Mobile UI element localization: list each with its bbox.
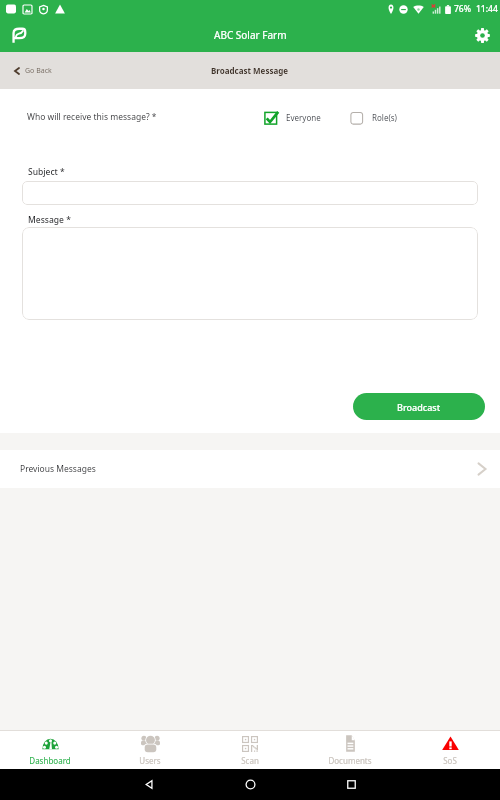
staticText: Subject *: [28, 166, 65, 178]
button[interactable]: Users: [100, 735, 200, 766]
staticText: Broadcast: [397, 401, 441, 413]
button[interactable]: Go Back: [13, 66, 52, 76]
staticText: Everyone: [286, 112, 321, 123]
button[interactable]: Home: [234, 769, 266, 800]
staticText: Who will receive this message? *: [27, 111, 157, 123]
button[interactable]: Home: [6, 23, 30, 47]
staticText: Documents: [328, 755, 372, 766]
button[interactable]: Previous Messages: [0, 450, 500, 488]
button[interactable]: SoS: [400, 735, 500, 766]
button[interactable]: Recent apps: [335, 769, 367, 800]
button[interactable]: [22, 181, 478, 205]
button[interactable]: Broadcast: [353, 393, 485, 420]
staticText: Role(s): [372, 112, 398, 123]
staticText: Scan: [241, 755, 259, 766]
button[interactable]: Documents: [300, 735, 400, 766]
staticText: SoS: [443, 755, 457, 766]
staticText: Broadcast Message: [211, 65, 289, 76]
staticText: Dashboard: [29, 755, 71, 766]
button[interactable]: Everyone: [264, 110, 321, 125]
button[interactable]: Role(s): [350, 110, 398, 125]
button[interactable]: Dashboard: [0, 735, 100, 766]
staticText: 76%: [454, 3, 471, 15]
staticText: Users: [139, 755, 161, 766]
staticText: 11:44: [476, 3, 498, 15]
button[interactable]: Settings: [470, 23, 494, 47]
button[interactable]: [22, 227, 478, 320]
button[interactable]: Scan: [200, 735, 300, 766]
staticText: Previous Messages: [20, 463, 96, 475]
staticText: ABC Solar Farm: [214, 28, 287, 42]
button[interactable]: Back: [133, 769, 165, 800]
staticText: Message *: [28, 214, 71, 226]
staticText: Go Back: [25, 66, 52, 76]
